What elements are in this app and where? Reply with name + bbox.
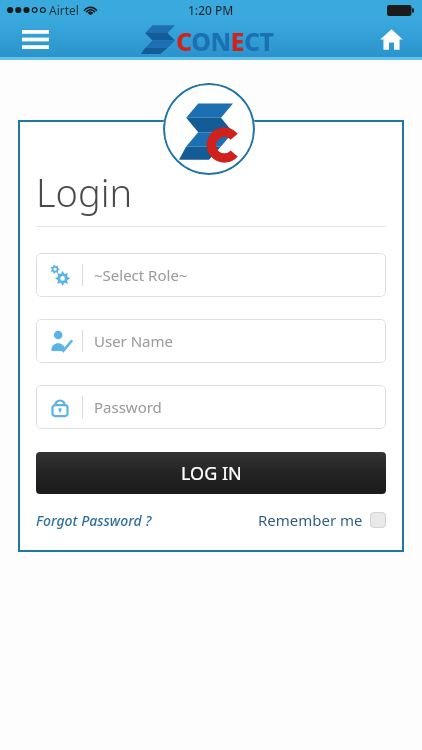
staticText: Forgot Password ? [36,511,152,530]
button[interactable]: Menu [17,21,53,57]
staticText: 1:20 PM [188,2,234,18]
staticText: LOG IN [181,461,242,486]
staticText: Remember me [258,510,363,530]
button[interactable]: Select role [36,253,386,297]
staticText: User Name [94,331,174,351]
button[interactable]: User name [36,319,386,363]
staticText: Password [94,397,162,417]
button[interactable]: Password [36,385,386,429]
button[interactable]: LOG IN [36,452,386,494]
staticText: Airtel [49,2,79,18]
staticText: CONECT [176,24,274,58]
staticText: ~Select Role~ [94,265,188,285]
button[interactable]: Remember me [258,510,386,530]
button[interactable]: Home [373,21,409,57]
staticText: Login [36,166,133,218]
button[interactable]: Forgot Password ? [36,511,152,530]
